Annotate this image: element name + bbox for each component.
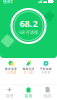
staticText: 68.2 [19,17,37,29]
button[interactable]: 清理 [0,85,19,100]
staticText: 我的 [43,93,51,98]
button[interactable]: 手机加速 [37,59,55,76]
staticText: GB 可清理 [19,29,38,35]
staticText: 清理 [5,93,13,98]
button[interactable]: 视频专清 [20,59,37,76]
button[interactable]: Scan and clean storage [10,8,46,44]
staticText: 12.4GB [5,71,16,74]
button[interactable]: 我的 [38,85,57,100]
button[interactable]: 微信清理 [2,59,20,76]
staticText: 去提速 [42,71,51,74]
staticText: 8.1GB [24,71,33,74]
button[interactable]: 首页 [19,85,38,100]
staticText: 微信清理 [5,67,17,71]
staticText: 手机加速 [40,67,52,71]
staticText: 9:41 [3,0,13,5]
staticText: 视频专清 [22,67,34,71]
staticText: 首页 [24,93,32,98]
